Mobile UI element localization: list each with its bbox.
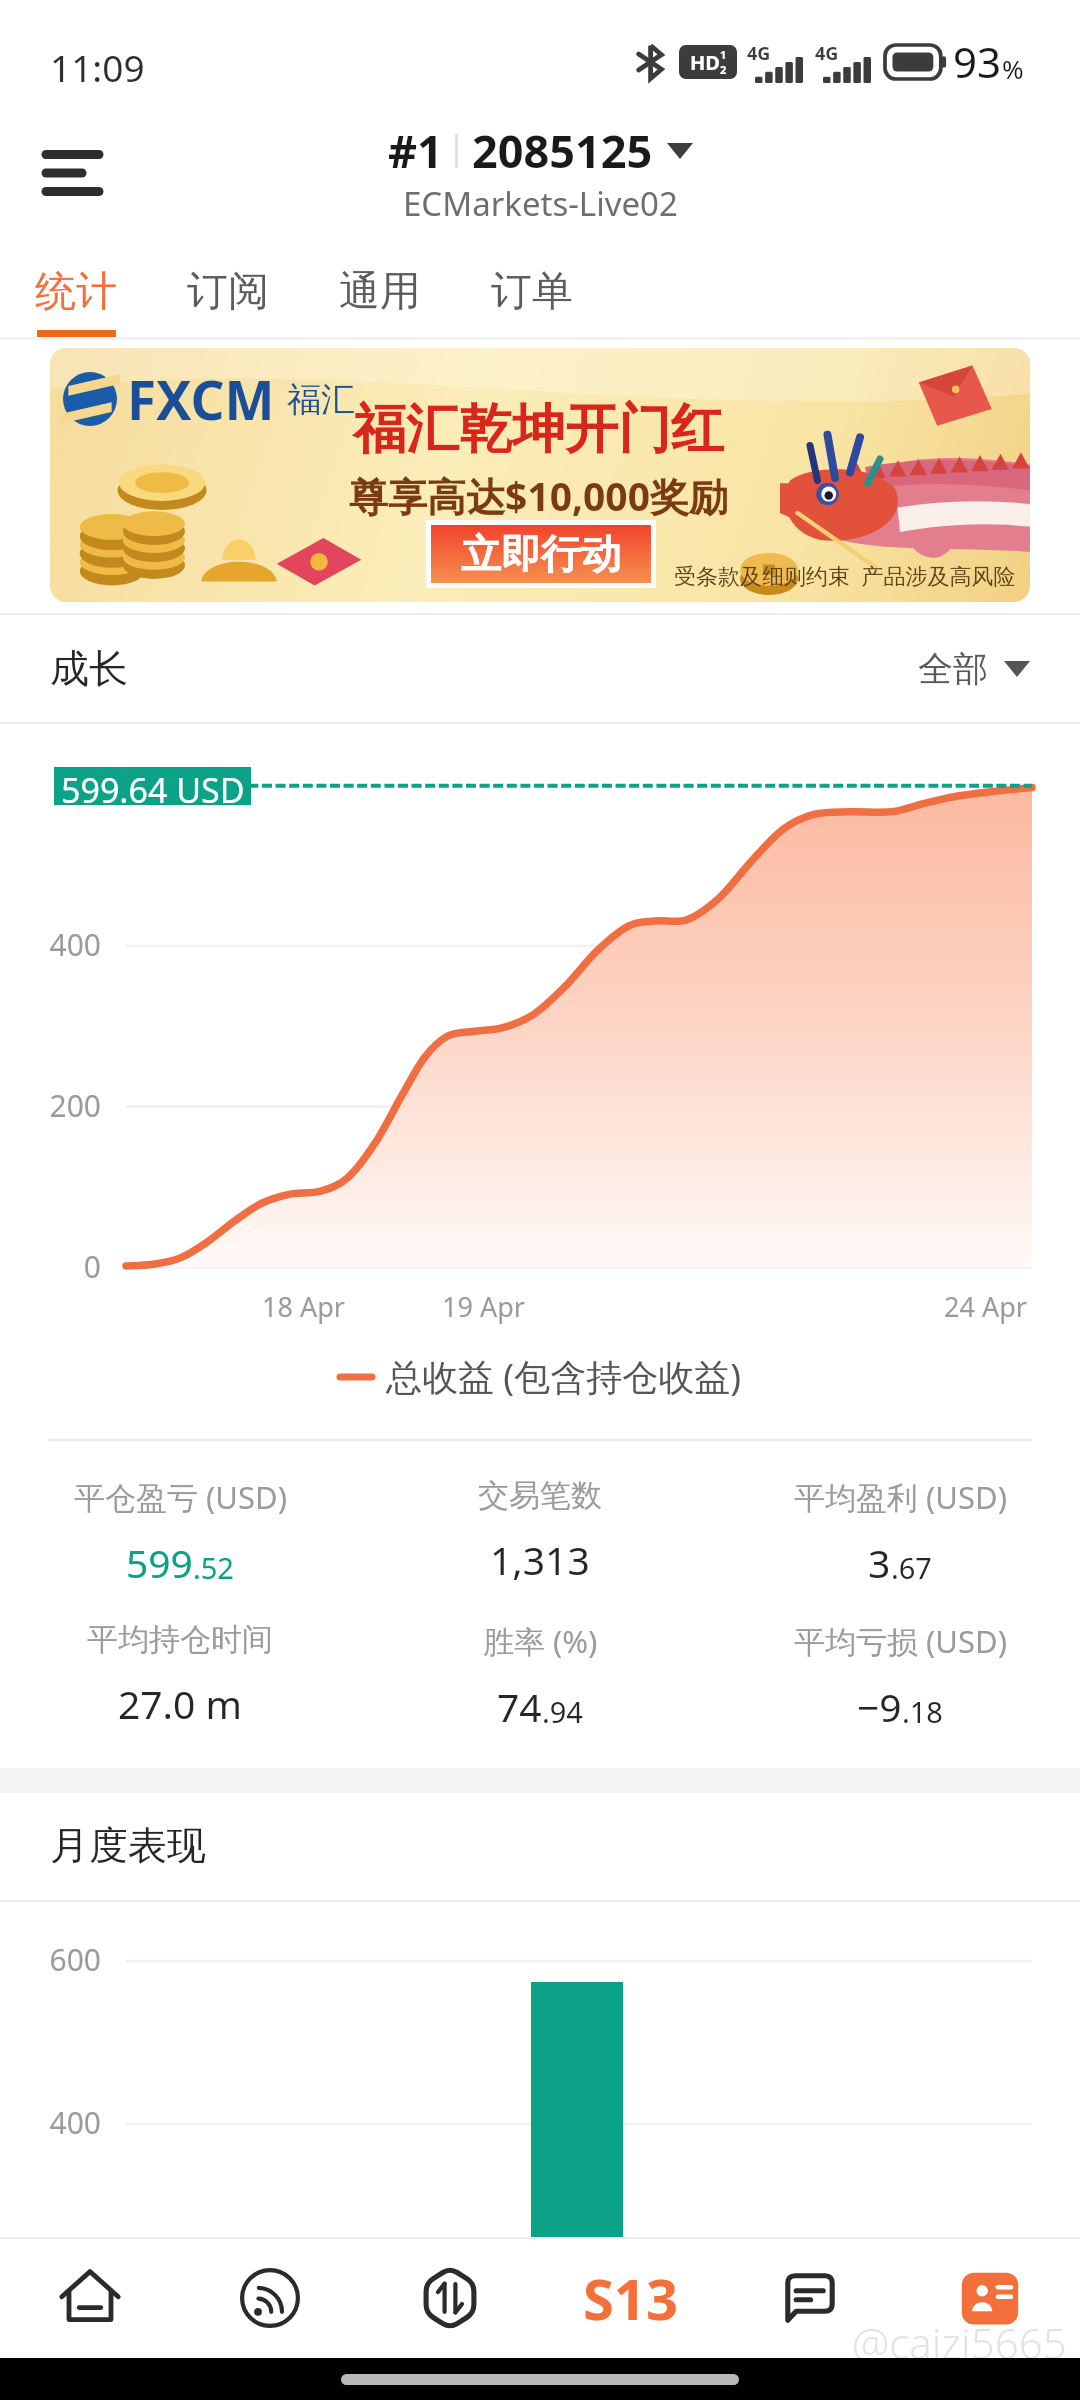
staticText: 1	[720, 47, 727, 62]
staticText: 4G	[815, 41, 839, 66]
staticText: 受条款及细则约束 产品涉及高风险	[674, 560, 1016, 590]
staticText: 月度表现	[50, 1821, 206, 1870]
button[interactable]: 统计	[0, 240, 152, 340]
staticText: .67	[891, 1548, 932, 1587]
staticText: 18 Apr	[262, 1288, 345, 1325]
staticText: 19 Apr	[442, 1288, 525, 1325]
staticText: 统计	[35, 266, 117, 318]
staticText: 93	[953, 33, 1002, 90]
staticText: 通用	[339, 266, 421, 318]
staticText: S13	[583, 2260, 678, 2336]
staticText: 0	[0, 1246, 101, 1287]
staticText: 胜率 (%)	[483, 1620, 598, 1662]
button[interactable]: Profile	[900, 2237, 1080, 2358]
staticText: 成长	[50, 644, 128, 693]
button[interactable]: S13	[540, 2237, 720, 2358]
staticText: 4G	[747, 41, 771, 66]
staticText: −9	[857, 1680, 902, 1733]
staticText: 11:09	[50, 42, 145, 92]
staticText: 立即行动	[461, 529, 621, 579]
button[interactable]: Menu	[22, 126, 122, 220]
staticText: 27.0 m	[118, 1677, 242, 1730]
staticText: 400	[0, 924, 101, 965]
staticText: 3	[868, 1536, 891, 1589]
staticText: 全部	[918, 647, 988, 691]
staticText: #1	[388, 120, 443, 181]
staticText: .18	[902, 1692, 943, 1731]
button[interactable]: 全部	[918, 647, 1030, 691]
staticText: @caizi5665	[852, 2314, 1067, 2371]
button[interactable]: Chat	[720, 2237, 900, 2358]
button[interactable]: 订阅	[152, 240, 304, 340]
staticText: 24 Apr	[944, 1288, 1027, 1325]
staticText: ECMarkets-Live02	[403, 181, 678, 226]
button[interactable]: #1	[388, 120, 693, 226]
staticText: 订单	[491, 266, 573, 318]
staticText: 400	[0, 2102, 101, 2143]
staticText: FXCM	[127, 363, 275, 435]
staticText: 599.64 USD	[61, 767, 245, 805]
staticText: 订阅	[187, 266, 269, 318]
button[interactable]: 立即行动	[431, 525, 651, 583]
staticText: 福汇	[287, 378, 355, 421]
button[interactable]: Signals	[180, 2237, 360, 2358]
button[interactable]: 订单	[456, 240, 608, 340]
staticText: 1,313	[490, 1533, 590, 1586]
staticText: HD	[690, 49, 720, 76]
staticText: %	[1002, 51, 1024, 86]
staticText: 交易笔数	[478, 1476, 602, 1515]
staticText: 200	[0, 1085, 101, 1126]
button[interactable]: Trade	[360, 2237, 540, 2358]
staticText: 平仓盈亏 (USD)	[74, 1476, 287, 1518]
staticText: 福汇乾坤开门红	[353, 396, 724, 463]
button[interactable]: FXCM	[50, 348, 1030, 602]
staticText: 600	[0, 1939, 101, 1980]
staticText: .94	[542, 1692, 583, 1731]
staticText: 599	[126, 1536, 193, 1589]
button[interactable]: 通用	[304, 240, 456, 340]
staticText: 74	[497, 1680, 542, 1733]
staticText: 平均持仓时间	[87, 1620, 273, 1659]
staticText: 2	[720, 62, 727, 77]
staticText: 总收益 (包含持仓收益)	[386, 1352, 741, 1401]
staticText: 平均亏损 (USD)	[794, 1620, 1007, 1662]
staticText: .52	[193, 1548, 234, 1587]
staticText: 平均盈利 (USD)	[794, 1476, 1007, 1518]
staticText: 尊享高达$10,000奖励	[349, 469, 728, 522]
staticText: 2085125	[472, 120, 653, 181]
button[interactable]: Home	[0, 2237, 180, 2358]
